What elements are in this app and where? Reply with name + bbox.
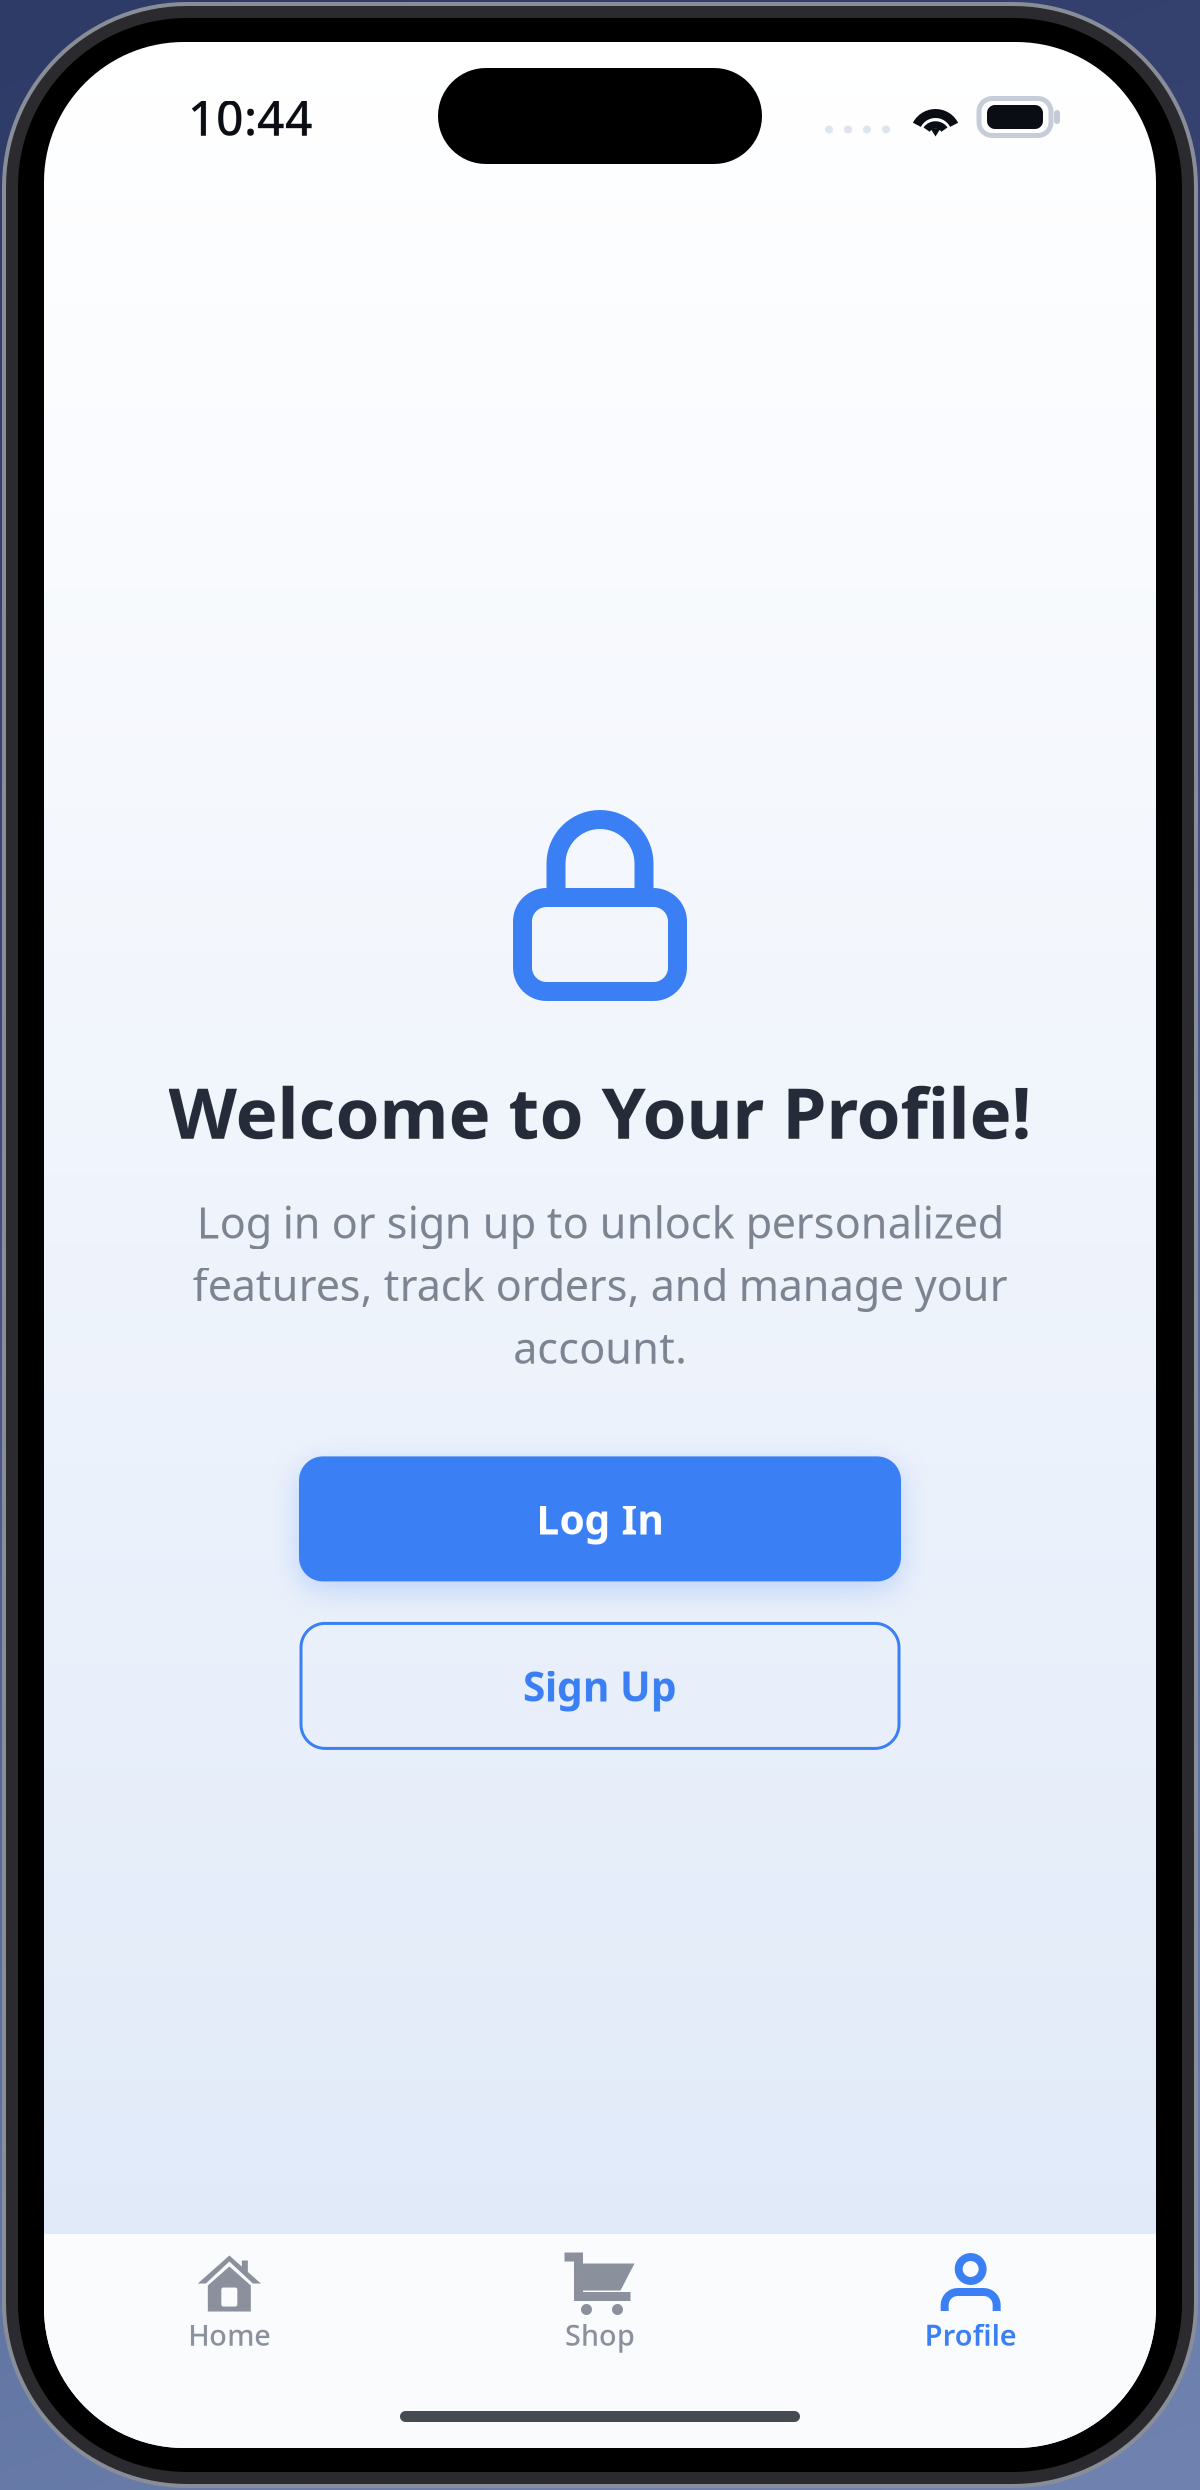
staticText: Welcome to Your Profile! <box>168 1063 1031 1159</box>
button[interactable]: Sign Up <box>301 1623 899 1748</box>
button[interactable]: Shop <box>415 2234 785 2448</box>
staticText: 10:44 <box>188 84 313 150</box>
button[interactable]: Home <box>44 2234 415 2448</box>
button[interactable]: Log In <box>299 1456 901 1581</box>
staticText: Shop <box>565 2315 635 2354</box>
staticText: Home <box>188 2315 270 2354</box>
staticText: Log In <box>536 1491 663 1546</box>
staticText: Sign Up <box>523 1658 677 1713</box>
button[interactable]: Profile <box>785 2234 1156 2448</box>
staticText: Profile <box>925 2315 1017 2354</box>
staticText: Log in or sign up to unlock personalized… <box>192 1192 1007 1376</box>
